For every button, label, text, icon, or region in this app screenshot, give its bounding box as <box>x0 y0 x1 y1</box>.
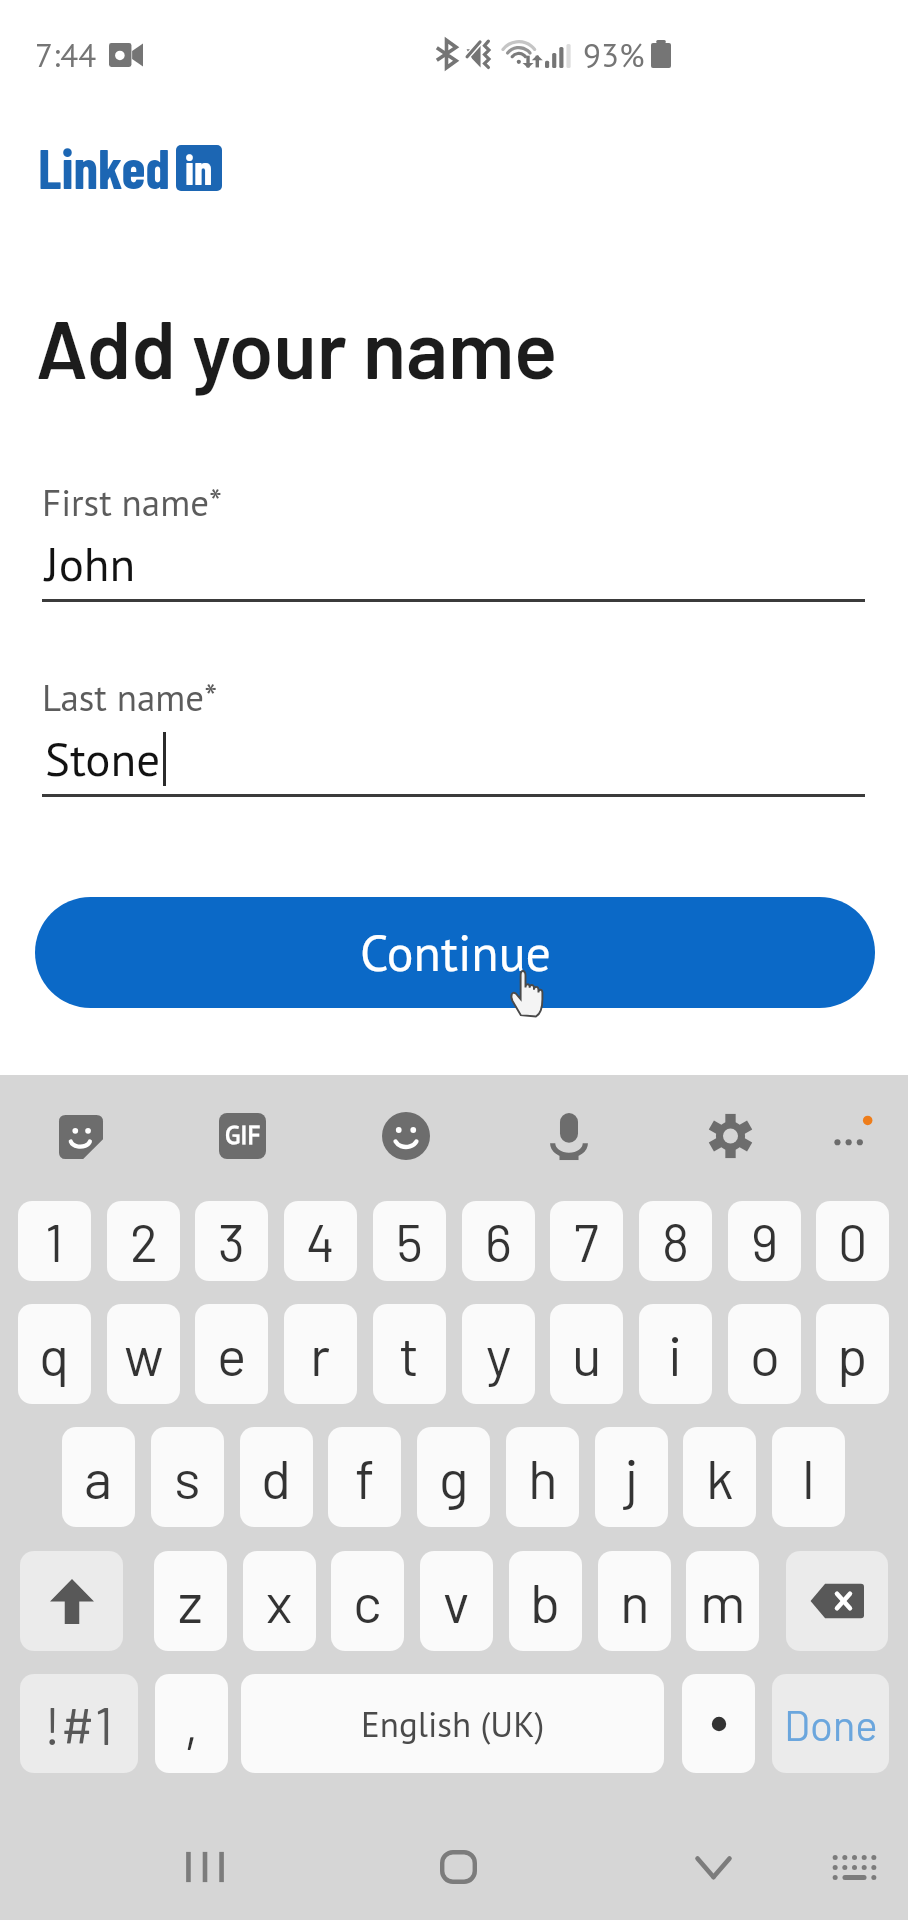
staticText: j <box>625 1444 639 1510</box>
button[interactable]: 5 <box>373 1201 446 1281</box>
staticText: 2 <box>130 1210 158 1272</box>
button[interactable]: Voice input <box>552 1113 586 1161</box>
button[interactable]: English (UK) <box>241 1674 664 1773</box>
button[interactable]: e <box>195 1304 268 1404</box>
button[interactable]: k <box>683 1427 756 1527</box>
staticText: d <box>261 1444 292 1510</box>
button[interactable]: Settings <box>707 1112 754 1160</box>
button[interactable]: !#1 <box>20 1674 138 1773</box>
staticText: g <box>439 1444 469 1510</box>
staticText: k <box>706 1444 734 1510</box>
button[interactable]: z <box>154 1551 227 1651</box>
staticText: First name* <box>42 478 223 526</box>
staticText: c <box>353 1568 382 1634</box>
staticText: 7 <box>574 1210 599 1272</box>
staticText: Add your name <box>36 299 558 395</box>
staticText: y <box>486 1321 512 1387</box>
button[interactable]: Stickers <box>59 1115 103 1159</box>
button[interactable]: f <box>328 1427 401 1527</box>
staticText: 8 <box>662 1210 690 1272</box>
staticText: 4 <box>306 1210 335 1272</box>
button[interactable]: 1 <box>18 1201 91 1281</box>
button[interactable]: Done <box>772 1674 889 1773</box>
button[interactable]: o <box>728 1304 801 1404</box>
button[interactable]: More options <box>824 1110 880 1162</box>
button[interactable]: c <box>331 1551 404 1651</box>
staticText: 9 <box>751 1210 779 1272</box>
button[interactable]: 0 <box>816 1201 889 1281</box>
button[interactable]: Home <box>440 1850 477 1884</box>
staticText: 6 <box>485 1210 512 1272</box>
button[interactable]: j <box>595 1427 668 1527</box>
button[interactable]: d <box>240 1427 313 1527</box>
button[interactable]: 3 <box>195 1201 268 1281</box>
staticText: l <box>802 1444 815 1510</box>
staticText: s <box>174 1444 201 1510</box>
button[interactable]: 7 <box>550 1201 623 1281</box>
staticText: u <box>572 1321 602 1387</box>
button[interactable]: n <box>598 1551 671 1651</box>
staticText: v <box>443 1568 470 1634</box>
staticText: o <box>750 1321 780 1387</box>
button[interactable]: q <box>18 1304 91 1404</box>
staticText: w <box>124 1321 164 1387</box>
staticText: John <box>45 533 136 594</box>
staticText: in <box>185 145 213 190</box>
button[interactable]: Recents <box>182 1846 228 1888</box>
staticText: Linked <box>38 134 171 200</box>
button[interactable]: w <box>107 1304 180 1404</box>
button[interactable]: l <box>772 1427 845 1527</box>
button[interactable]: u <box>550 1304 623 1404</box>
button[interactable]: , <box>155 1674 228 1773</box>
staticText: x <box>266 1568 293 1634</box>
staticText: z <box>178 1568 203 1634</box>
staticText: i <box>668 1321 683 1387</box>
staticText: m <box>700 1568 746 1634</box>
button[interactable]: i <box>639 1304 712 1404</box>
button[interactable]: 8 <box>639 1201 712 1281</box>
button[interactable]: g <box>417 1427 490 1527</box>
staticText: e <box>217 1321 247 1387</box>
staticText: p <box>837 1321 868 1387</box>
button[interactable]: r <box>284 1304 357 1404</box>
staticText: 0 <box>838 1210 868 1272</box>
button[interactable]: x <box>243 1551 316 1651</box>
button[interactable]: a <box>62 1427 135 1527</box>
button[interactable]: b <box>509 1551 582 1651</box>
button[interactable]: GIF <box>219 1113 266 1159</box>
button[interactable]: t <box>373 1304 446 1404</box>
button[interactable]: Emoji <box>381 1111 431 1161</box>
staticText: , <box>184 1691 199 1757</box>
button[interactable]: m <box>686 1551 759 1651</box>
staticText: English (UK) <box>361 1701 545 1746</box>
staticText: q <box>39 1321 70 1387</box>
button[interactable]: p <box>816 1304 889 1404</box>
button[interactable]: Hide keyboard <box>694 1853 733 1883</box>
staticText: Continue <box>360 920 551 985</box>
staticText: n <box>620 1568 650 1634</box>
button[interactable]: h <box>506 1427 579 1527</box>
button[interactable]: 4 <box>284 1201 357 1281</box>
button[interactable]: 6 <box>462 1201 535 1281</box>
staticText: 7:44 <box>35 33 97 76</box>
button[interactable]: 9 <box>728 1201 801 1281</box>
staticText: 93% <box>583 33 645 76</box>
button[interactable]: 2 <box>107 1201 180 1281</box>
staticText: Stone <box>45 728 161 789</box>
button[interactable]: v <box>420 1551 493 1651</box>
button[interactable]: Shift <box>20 1551 123 1651</box>
staticText: f <box>355 1444 375 1510</box>
button[interactable]: Continue <box>35 897 875 1008</box>
staticText: b <box>530 1568 561 1634</box>
staticText: Last name* <box>42 673 218 721</box>
staticText: a <box>84 1444 113 1510</box>
staticText: Done <box>784 1699 878 1749</box>
button[interactable]: Backspace <box>786 1551 888 1651</box>
button[interactable]: s <box>151 1427 224 1527</box>
staticText: 1 <box>45 1210 64 1272</box>
staticText: h <box>528 1444 558 1510</box>
button[interactable]: y <box>462 1304 535 1404</box>
button[interactable]: Switch keyboard <box>833 1855 876 1880</box>
button[interactable]: Period <box>682 1674 755 1773</box>
staticText: r <box>310 1321 331 1387</box>
